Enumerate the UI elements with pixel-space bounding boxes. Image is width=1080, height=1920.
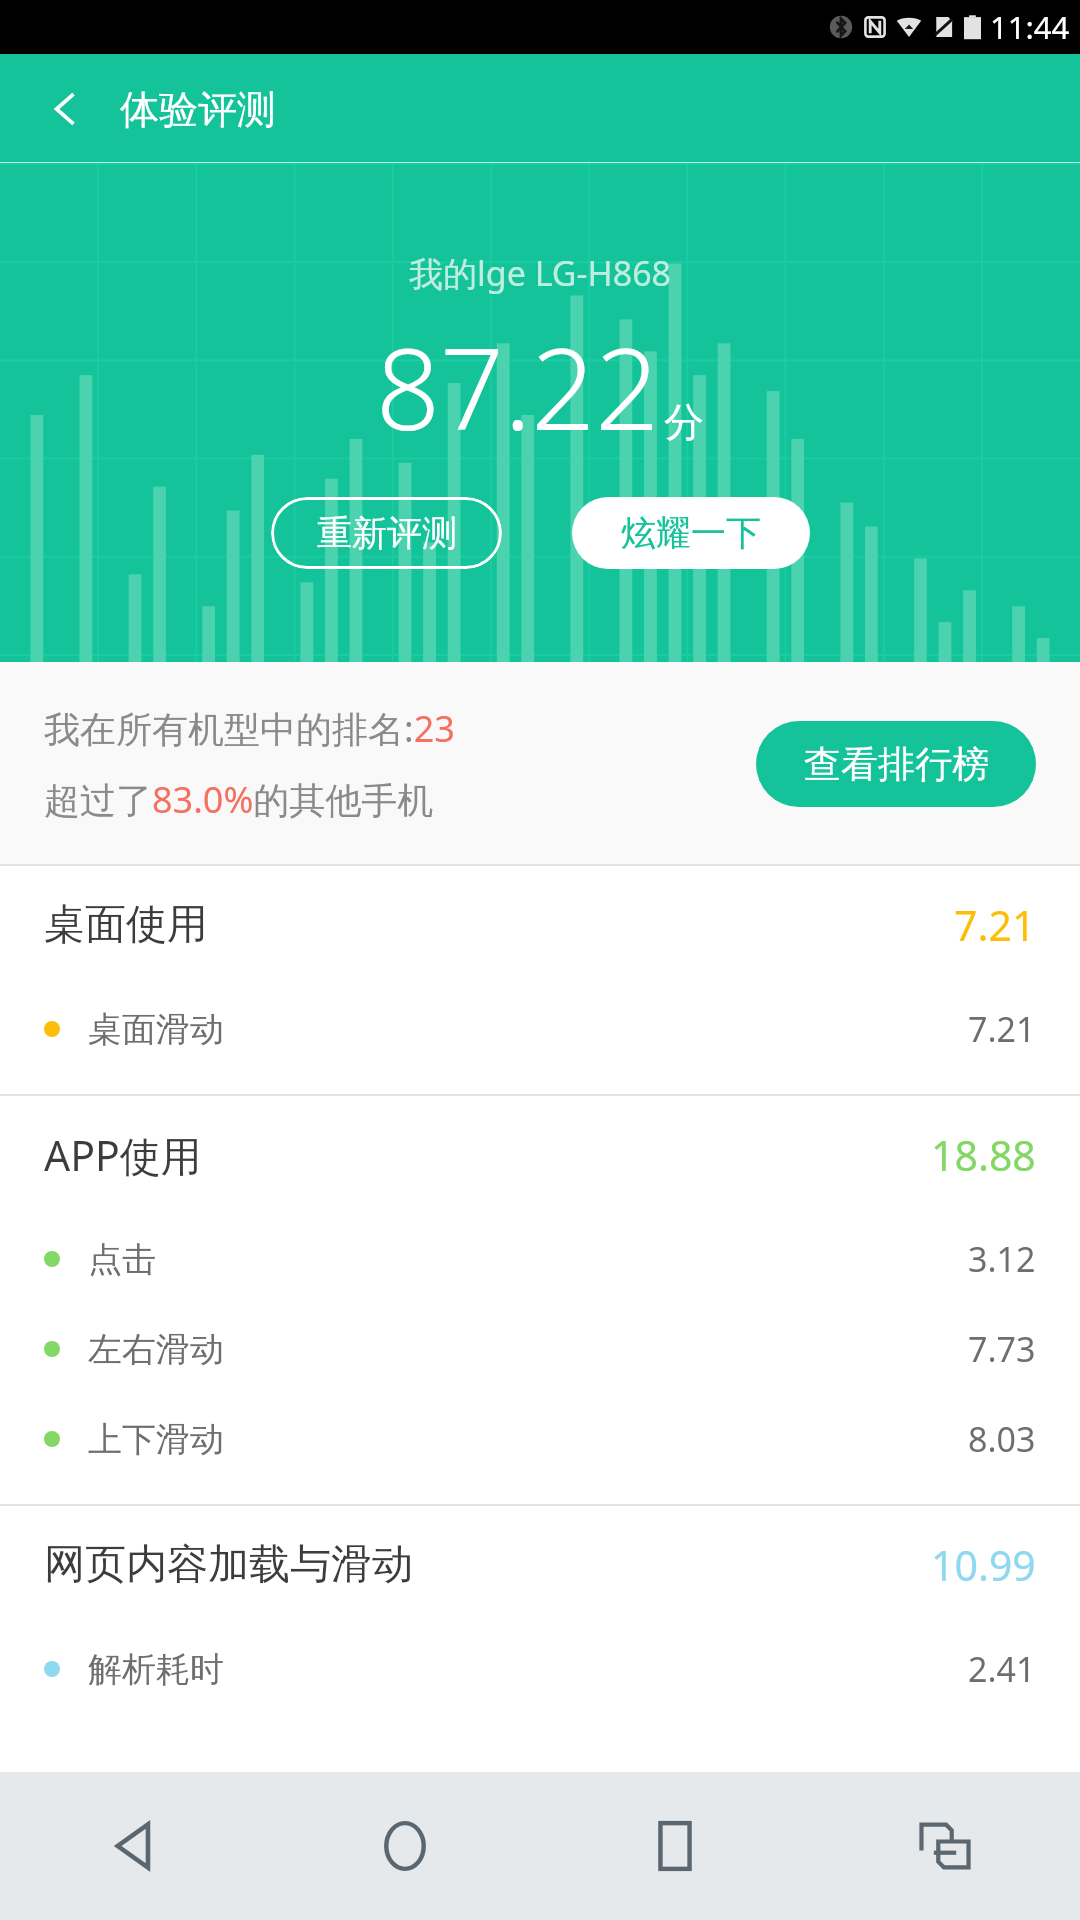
staticText: 超过了83.0%的其他手机 [44,775,434,824]
staticText: 上下滑动 [88,1418,224,1461]
staticText: 7.73 [968,1326,1036,1372]
button[interactable]: Switch apps [810,1772,1080,1920]
staticText: 我的lge LG-H868 [409,250,672,296]
button[interactable]: 解析耗时 [0,1624,1080,1714]
staticText: 炫耀一下 [621,511,761,555]
staticText: 分 [664,397,704,447]
staticText: 2.41 [968,1646,1036,1692]
staticText: 11:44 [990,6,1070,48]
button[interactable]: 桌面使用 [0,866,1080,984]
staticText: 网页内容加载与滑动 [44,1539,413,1591]
button[interactable]: 重新评测 [271,497,502,569]
staticText: 桌面使用 [44,899,208,951]
button[interactable]: 点击 [0,1214,1080,1304]
button[interactable]: 左右滑动 [0,1304,1080,1394]
staticText: 我在所有机型中的排名:23 [44,704,455,753]
staticText: 3.12 [968,1236,1036,1282]
staticText: 桌面滑动 [88,1008,224,1051]
staticText: 87.22 [376,310,660,463]
staticText: 体验评测 [120,85,276,134]
staticText: 8.03 [968,1416,1036,1462]
button[interactable]: Home [270,1772,540,1920]
staticText: 7.21 [968,1006,1036,1052]
button[interactable]: Back [34,77,98,141]
button[interactable]: 桌面滑动 [0,984,1080,1074]
staticText: 重新评测 [317,511,457,555]
staticText: 点击 [88,1238,156,1281]
staticText: 左右滑动 [88,1328,224,1371]
staticText: 解析耗时 [88,1648,224,1691]
button[interactable]: APP使用 [0,1096,1080,1214]
staticText: 18.88 [931,1127,1036,1183]
button[interactable]: 炫耀一下 [572,497,810,569]
staticText: 查看排行榜 [804,741,989,788]
button[interactable]: Recent apps [540,1772,810,1920]
button[interactable]: 上下滑动 [0,1394,1080,1484]
button[interactable]: 查看排行榜 [756,721,1036,807]
staticText: APP使用 [44,1127,202,1183]
button[interactable]: 网页内容加载与滑动 [0,1506,1080,1624]
staticText: 10.99 [931,1537,1036,1593]
staticText: 7.21 [954,897,1036,953]
button[interactable]: Back [0,1772,270,1920]
